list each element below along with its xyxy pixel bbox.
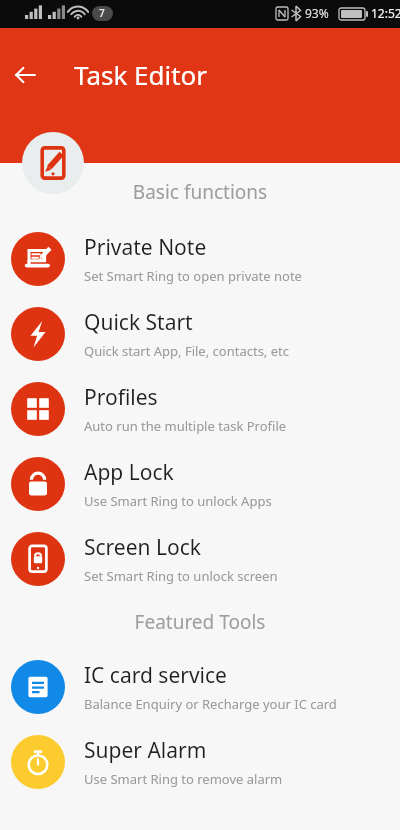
staticText: Balance Enquiry or Recharge your IC card bbox=[84, 695, 337, 713]
button[interactable]: App Lock bbox=[0, 446, 400, 521]
button[interactable]: Task editor icon bbox=[22, 132, 84, 194]
button[interactable]: Private Note bbox=[0, 221, 400, 296]
button[interactable]: Screen Lock bbox=[0, 521, 400, 596]
staticText: Basic functions bbox=[0, 179, 400, 205]
staticText: Quick Start bbox=[84, 308, 193, 337]
staticText: Set Smart Ring to unlock screen bbox=[84, 567, 278, 585]
staticText: Use Smart Ring to unlock Apps bbox=[84, 492, 272, 510]
staticText: Task Editor bbox=[74, 57, 208, 92]
staticText: IC card service bbox=[84, 661, 227, 690]
button[interactable]: Back bbox=[6, 56, 44, 94]
button[interactable]: Profiles bbox=[0, 371, 400, 446]
staticText: Profiles bbox=[84, 383, 158, 412]
button[interactable]: IC card service bbox=[0, 649, 400, 724]
staticText: App Lock bbox=[84, 458, 174, 487]
staticText: Featured Tools bbox=[0, 609, 400, 635]
staticText: Screen Lock bbox=[84, 533, 201, 562]
staticText: Use Smart Ring to remove alarm bbox=[84, 770, 283, 788]
staticText: Set Smart Ring to open private note bbox=[84, 267, 302, 285]
staticText: Super Alarm bbox=[84, 736, 207, 765]
staticText: 93% bbox=[305, 5, 329, 21]
staticText: Private Note bbox=[84, 233, 207, 262]
staticText: Quick start App, File, contacts, etc bbox=[84, 342, 289, 360]
staticText: 7 bbox=[99, 6, 105, 20]
button[interactable]: Quick Start bbox=[0, 296, 400, 371]
staticText: Auto run the multiple task Profile bbox=[84, 417, 287, 435]
button[interactable]: Super Alarm bbox=[0, 724, 400, 799]
staticText: 12:52 bbox=[371, 5, 400, 21]
